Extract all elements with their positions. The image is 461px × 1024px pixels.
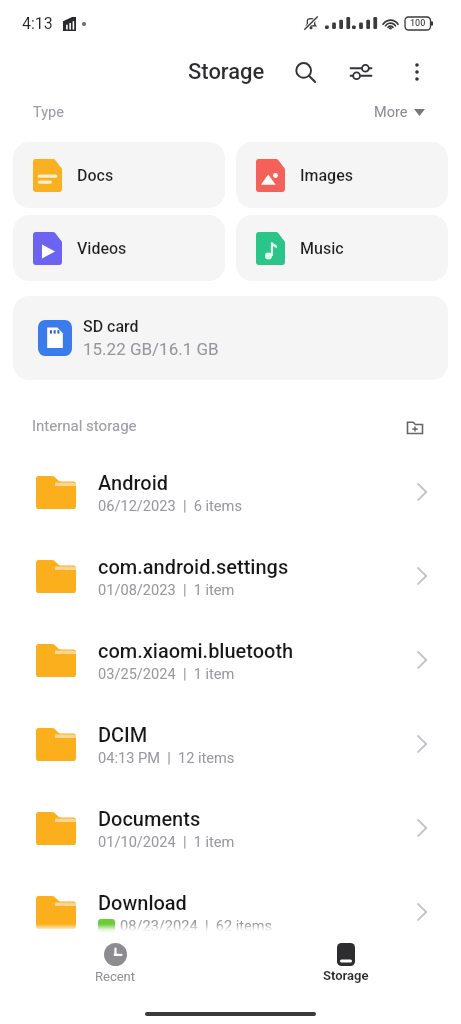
- staticText: Type: [33, 104, 64, 121]
- staticText: 100: [410, 18, 426, 29]
- button[interactable]: Recent: [0, 943, 230, 995]
- staticText: Storage: [188, 59, 265, 85]
- staticText: Docs: [77, 166, 114, 185]
- button[interactable]: SD card: [13, 296, 448, 380]
- staticText: Android: [98, 471, 169, 494]
- staticText: com.xiaomi.bluetooth: [98, 639, 294, 662]
- staticText: 01/08/2023 | 1 item: [98, 581, 235, 598]
- staticText: Videos: [77, 239, 127, 258]
- button[interactable]: More: [370, 100, 429, 125]
- staticText: com.android.settings: [98, 555, 289, 578]
- button[interactable]: DCIM: [0, 702, 461, 786]
- staticText: Images: [300, 166, 353, 185]
- staticText: 08/23/2024 | 62 items: [120, 917, 273, 934]
- staticText: DCIM: [98, 723, 148, 746]
- button[interactable]: Documents: [0, 786, 461, 870]
- button[interactable]: Music: [236, 215, 448, 281]
- staticText: Internal storage: [32, 417, 137, 435]
- button[interactable]: More options: [397, 52, 437, 92]
- staticText: 04:13 PM | 12 items: [98, 749, 235, 766]
- staticText: 15.22 GB/16.1 GB: [83, 339, 219, 359]
- staticText: 06/12/2023 | 6 items: [98, 497, 242, 514]
- button[interactable]: Storage: [230, 943, 461, 995]
- button[interactable]: Android: [0, 450, 461, 534]
- staticText: More: [374, 104, 408, 121]
- button[interactable]: New folder: [398, 409, 432, 443]
- staticText: Recent: [95, 969, 136, 984]
- staticText: SD card: [83, 317, 139, 336]
- button[interactable]: com.xiaomi.bluetooth: [0, 618, 461, 702]
- staticText: Documents: [98, 807, 201, 830]
- button[interactable]: Search: [285, 52, 325, 92]
- staticText: 01/10/2024 | 1 item: [98, 833, 235, 850]
- button[interactable]: Videos: [13, 215, 225, 281]
- staticText: 4:13: [22, 14, 53, 33]
- button[interactable]: Images: [236, 142, 448, 208]
- staticText: Storage: [323, 968, 369, 983]
- button[interactable]: Docs: [13, 142, 225, 208]
- button[interactable]: com.android.settings: [0, 534, 461, 618]
- button[interactable]: Sort: [341, 52, 381, 92]
- staticText: 03/25/2024 | 1 item: [98, 665, 235, 682]
- staticText: Download: [98, 891, 187, 914]
- button[interactable]: Download: [0, 870, 461, 954]
- staticText: Music: [300, 239, 344, 258]
